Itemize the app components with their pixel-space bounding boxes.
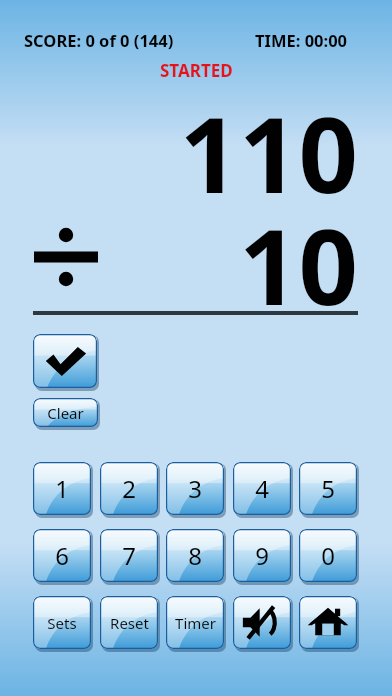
button[interactable]: 8 bbox=[166, 528, 224, 583]
staticText: 5 bbox=[321, 472, 335, 505]
button[interactable]: Timer bbox=[166, 595, 224, 650]
button[interactable]: 7 bbox=[100, 528, 158, 583]
button[interactable]: Clear bbox=[33, 397, 98, 428]
staticText: 110 bbox=[179, 82, 358, 224]
button[interactable]: 3 bbox=[166, 461, 224, 516]
staticText: 10 bbox=[239, 194, 358, 336]
button[interactable]: Home bbox=[299, 595, 357, 650]
staticText: Timer bbox=[175, 613, 216, 633]
staticText: 8 bbox=[188, 539, 202, 572]
staticText: 6 bbox=[55, 539, 69, 572]
button[interactable]: Reset bbox=[100, 595, 158, 650]
button[interactable]: 2 bbox=[100, 461, 158, 516]
button[interactable]: 9 bbox=[233, 528, 291, 583]
staticText: Reset bbox=[110, 613, 149, 633]
button[interactable]: 6 bbox=[33, 528, 91, 583]
staticText: STARTED bbox=[160, 59, 233, 82]
staticText: SCORE: 0 of 0 (144) bbox=[24, 29, 174, 51]
staticText: 3 bbox=[188, 472, 202, 505]
button[interactable]: 1 bbox=[33, 461, 91, 516]
staticText: Sets bbox=[47, 613, 77, 633]
button[interactable]: 4 bbox=[233, 461, 291, 516]
button[interactable]: Check answer bbox=[33, 333, 97, 389]
button[interactable]: 5 bbox=[299, 461, 357, 516]
staticText: 9 bbox=[255, 539, 269, 572]
staticText: 0 bbox=[321, 539, 335, 572]
staticText: Clear bbox=[47, 403, 84, 423]
staticText: 1 bbox=[55, 472, 69, 505]
staticText: TIME: 00:00 bbox=[255, 29, 348, 51]
button[interactable]: Sets bbox=[33, 595, 91, 650]
staticText: 4 bbox=[255, 472, 269, 505]
button[interactable]: 0 bbox=[299, 528, 357, 583]
staticText: 7 bbox=[122, 539, 136, 572]
button[interactable]: Mute sound bbox=[233, 595, 291, 650]
staticText: 2 bbox=[122, 472, 136, 505]
